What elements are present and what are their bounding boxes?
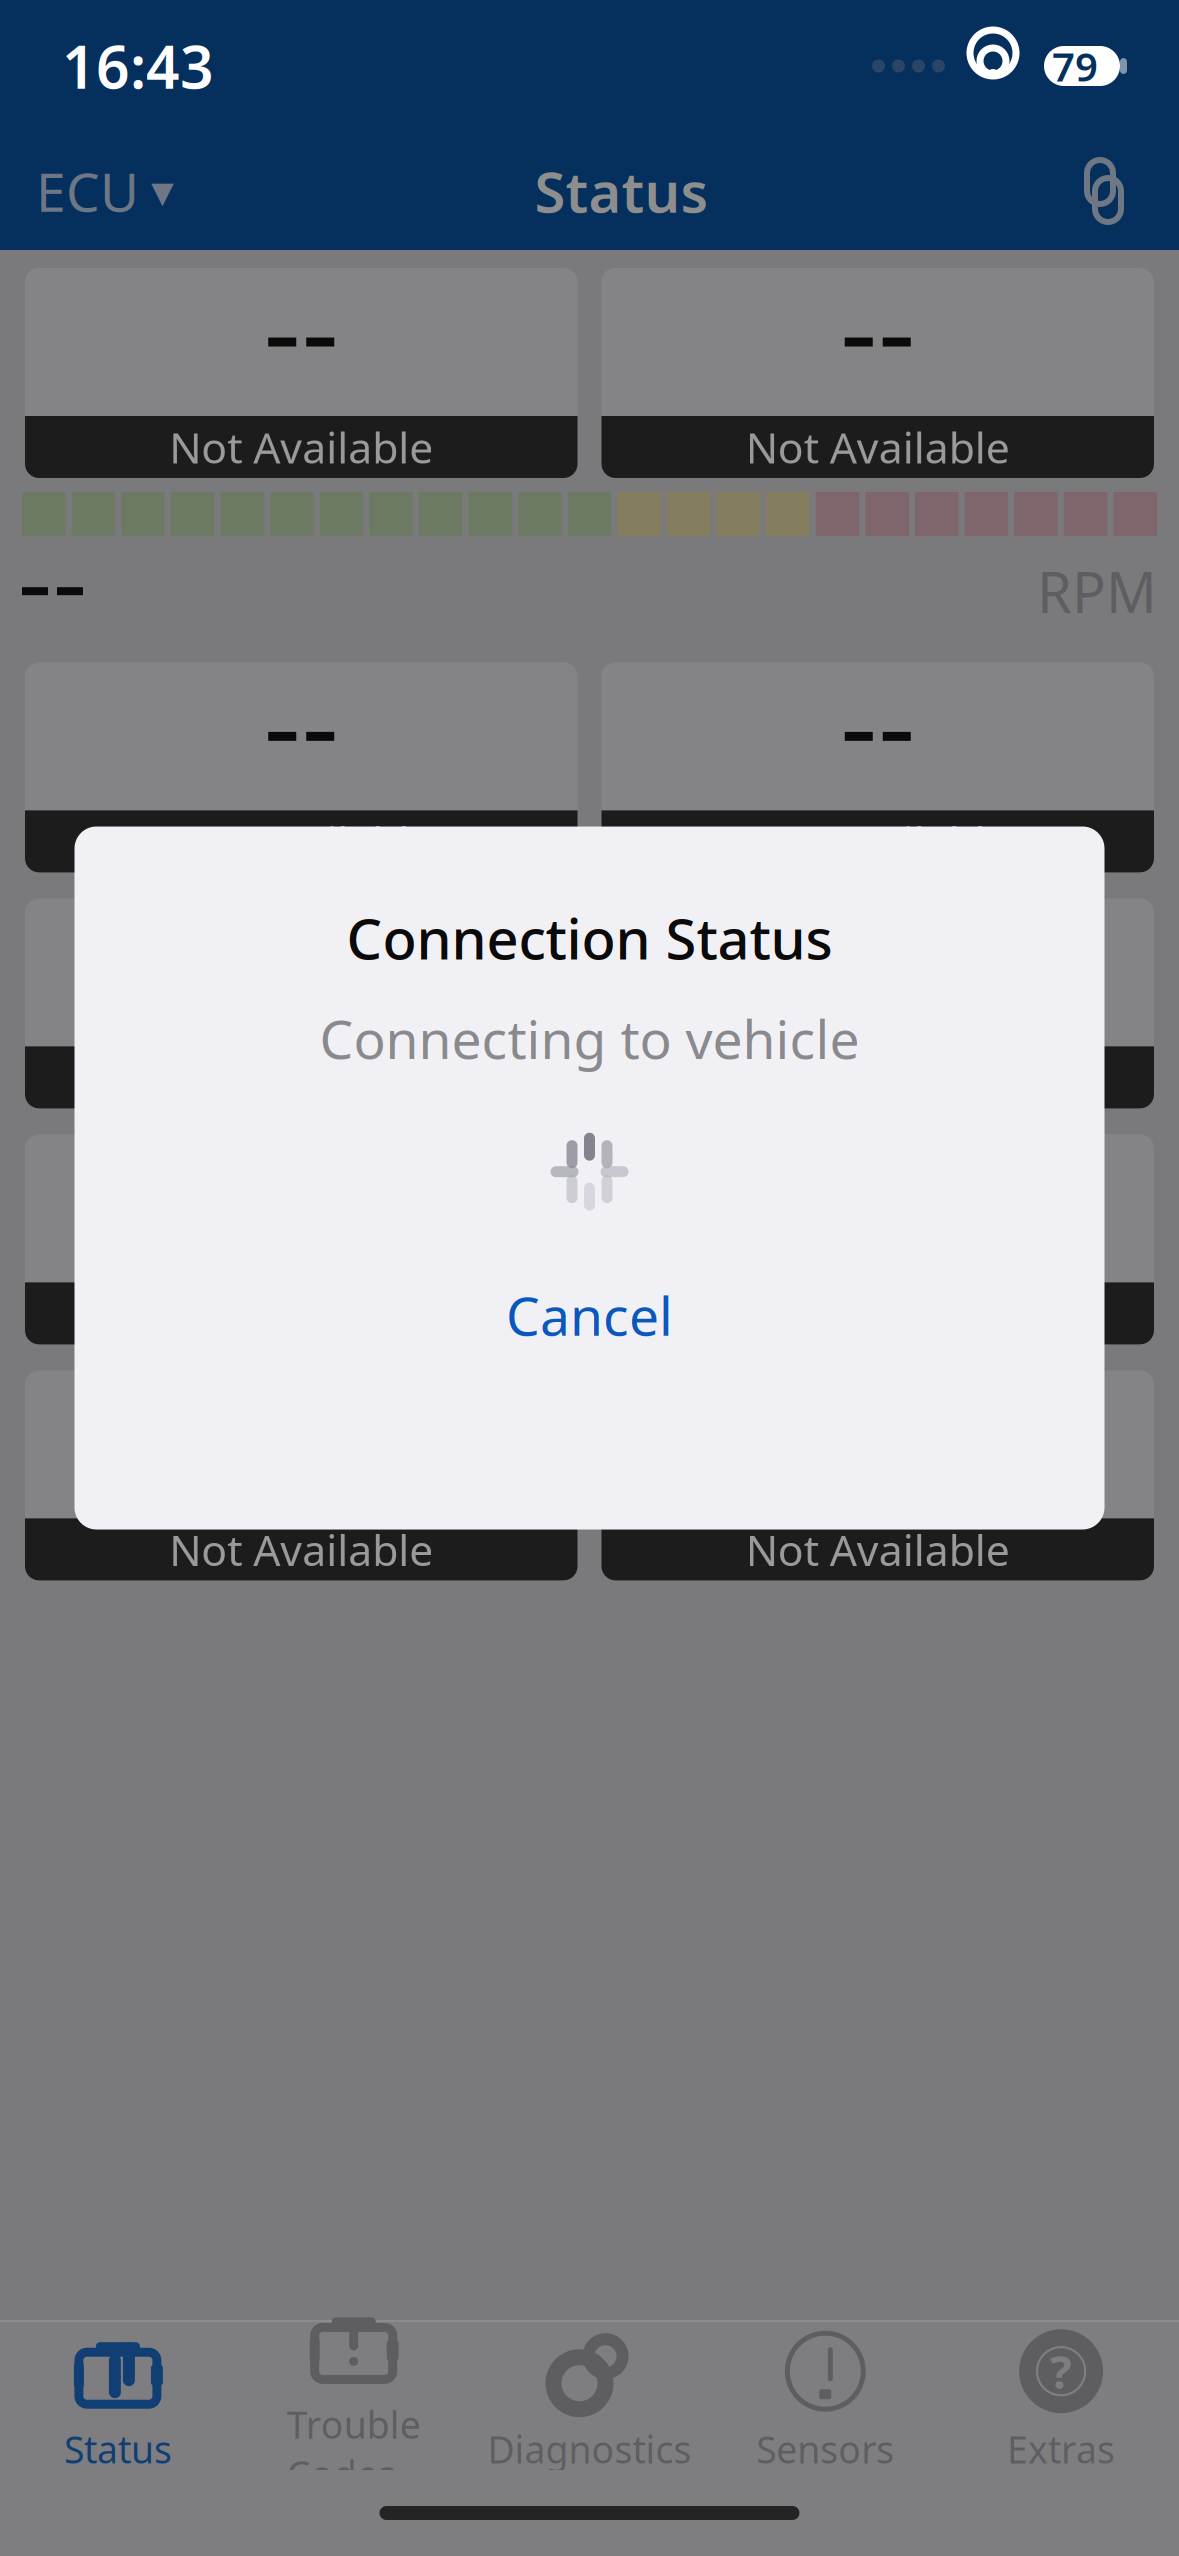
button[interactable]: Not Available (25, 898, 577, 1108)
button[interactable]: Status (0, 2312, 236, 2480)
button[interactable]: Cancel (74, 1256, 1104, 1374)
staticText: Diagnostics (487, 2424, 691, 2474)
button[interactable]: Trouble Codes (236, 2287, 472, 2505)
staticText: Sensors (756, 2424, 894, 2474)
staticText: ? (1050, 2341, 1072, 2401)
staticText: Trouble Codes (287, 2399, 421, 2499)
staticText: Not Available (169, 419, 433, 475)
button[interactable]: Not Available (25, 1370, 577, 1580)
staticText: Cancel (506, 1280, 673, 1350)
button[interactable]: Not Available (601, 268, 1154, 478)
button[interactable]: Not Available (25, 1134, 577, 1344)
staticText: 16:43 (62, 27, 214, 105)
button[interactable]: Not Available (25, 268, 577, 478)
button[interactable]: ? (943, 2312, 1179, 2480)
staticText: Connection Status (346, 900, 832, 975)
button[interactable]: ECU (0, 142, 174, 240)
staticText: Not Available (169, 1049, 433, 1106)
button[interactable]: Not Available (601, 1370, 1154, 1580)
button[interactable]: Sensors (707, 2312, 943, 2480)
button[interactable]: Not Available (601, 1134, 1154, 1344)
staticText: ECU (36, 156, 139, 226)
staticText: Extras (1007, 2424, 1115, 2474)
staticText: ▾ (151, 165, 174, 217)
button[interactable]: Not Available (25, 662, 577, 872)
staticText: Status (534, 154, 708, 228)
staticText: Not Available (169, 1521, 433, 1578)
staticText: Not Available (746, 813, 1010, 870)
button[interactable]: Connect (1069, 152, 1179, 230)
staticText: RPM (1037, 554, 1157, 628)
staticText: 79 (1052, 39, 1098, 92)
staticText: Connecting to vehicle (319, 1003, 859, 1074)
staticText: Not Available (169, 813, 433, 870)
button[interactable]: Diagnostics (472, 2312, 707, 2480)
button[interactable]: Not Available (601, 898, 1154, 1108)
staticText: Not Available (746, 1049, 1010, 1106)
button[interactable]: Not Available (601, 662, 1154, 872)
staticText: Status (64, 2424, 172, 2474)
staticText: Not Available (746, 1521, 1010, 1578)
staticText: Not Available (746, 419, 1010, 475)
